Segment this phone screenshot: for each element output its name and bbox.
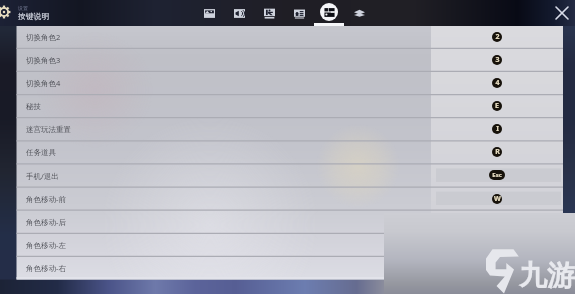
- staticText: E: [495, 101, 499, 111]
- staticText: Esc: [492, 171, 502, 179]
- staticText: 手机/退出: [26, 171, 59, 181]
- staticText: 切换角色4: [26, 78, 61, 88]
- staticText: W: [494, 194, 501, 204]
- staticText: 4: [495, 78, 500, 88]
- button[interactable]: 角色移动-右: [17, 256, 564, 279]
- button[interactable]: Graphics: [194, 0, 224, 26]
- staticText: 2: [495, 32, 500, 42]
- staticText: 3: [495, 55, 500, 65]
- button[interactable]: 手机/退出: [17, 164, 564, 187]
- button[interactable]: 切换角色3: [17, 48, 564, 71]
- button[interactable]: 切换角色2: [17, 25, 564, 48]
- staticText: 九游: [519, 258, 575, 293]
- staticText: 角色移动-前: [26, 194, 66, 204]
- staticText: R: [495, 147, 500, 157]
- staticText: 角色移动-右: [26, 263, 66, 273]
- staticText: 角色移动-左: [26, 240, 66, 250]
- button[interactable]: Close: [553, 4, 571, 22]
- staticText: 按键说明: [18, 11, 50, 21]
- staticText: 任务道具: [26, 148, 56, 157]
- button[interactable]: Controls: [254, 0, 284, 26]
- button[interactable]: Other: [344, 0, 374, 26]
- staticText: 切换角色3: [26, 55, 61, 65]
- button[interactable]: 角色移动-前: [17, 187, 564, 210]
- button[interactable]: 角色移动-后: [17, 210, 564, 233]
- button[interactable]: Key bindings: [314, 0, 344, 26]
- button[interactable]: 设置: [0, 5, 11, 19]
- staticText: 角色移动-后: [26, 217, 66, 227]
- staticText: 设置: [18, 5, 28, 11]
- button[interactable]: 迷宫玩法重置: [17, 118, 564, 141]
- button[interactable]: 角色移动-左: [17, 233, 564, 256]
- button[interactable]: 秘技: [17, 95, 564, 118]
- button[interactable]: Audio: [224, 0, 254, 26]
- staticText: 迷宫玩法重置: [26, 125, 71, 134]
- button[interactable]: 任务道具: [17, 141, 564, 164]
- staticText: I: [496, 124, 499, 134]
- button[interactable]: 切换角色4: [17, 71, 564, 94]
- staticText: 秘技: [26, 102, 41, 111]
- staticText: 切换角色2: [26, 32, 61, 42]
- button[interactable]: Interface: [284, 0, 314, 26]
